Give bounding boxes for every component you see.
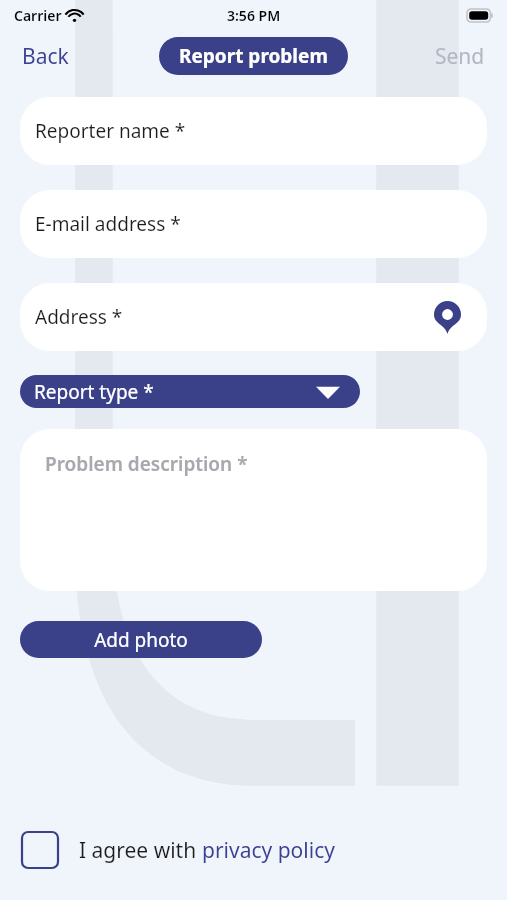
button[interactable]: Address * xyxy=(20,283,487,351)
button[interactable]: Reporter name * xyxy=(20,97,487,165)
button[interactable]: Problem description * xyxy=(20,429,487,591)
button[interactable]: Add photo xyxy=(20,621,262,658)
button[interactable]: Report type * xyxy=(20,375,360,408)
button[interactable]: Back xyxy=(0,36,91,77)
staticText: privacy policy xyxy=(202,836,335,865)
button[interactable]: Pick location on map xyxy=(427,297,467,337)
staticText: 3:56 PM xyxy=(227,6,281,25)
staticText: Back xyxy=(22,42,69,71)
staticText: Address * xyxy=(35,304,123,330)
staticText: Report type * xyxy=(34,379,154,405)
button[interactable]: Send xyxy=(413,36,507,77)
staticText: E-mail address * xyxy=(35,211,181,237)
button[interactable]: privacy policy xyxy=(202,836,335,865)
staticText: Carrier xyxy=(14,6,62,25)
staticText: Send xyxy=(435,42,485,71)
button[interactable]: E-mail address * xyxy=(20,190,487,258)
staticText: Report problem xyxy=(179,43,328,69)
staticText: I agree with xyxy=(79,836,202,865)
button[interactable]: Report problem xyxy=(159,37,348,75)
staticText: Problem description * xyxy=(45,451,248,477)
button[interactable]: Agree with privacy policy xyxy=(20,830,60,870)
staticText: Add photo xyxy=(94,627,188,653)
staticText: Reporter name * xyxy=(35,118,186,144)
